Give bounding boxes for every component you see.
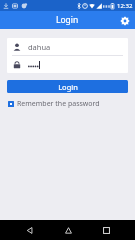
button[interactable]: Login [7, 80, 128, 93]
button[interactable]: Settings [117, 13, 132, 28]
staticText: Remember the password [17, 99, 100, 109]
staticText: Login [58, 82, 78, 92]
button[interactable]: Recents [96, 220, 116, 240]
button[interactable] [7, 56, 128, 73]
staticText: dahua [28, 42, 51, 52]
button[interactable]: Home [58, 220, 78, 240]
staticText: 12:32 [117, 2, 133, 10]
button[interactable]: Remember the password [8, 99, 100, 109]
staticText: Login [56, 14, 79, 26]
button[interactable]: dahua [7, 38, 128, 55]
button[interactable]: Back [19, 220, 39, 240]
